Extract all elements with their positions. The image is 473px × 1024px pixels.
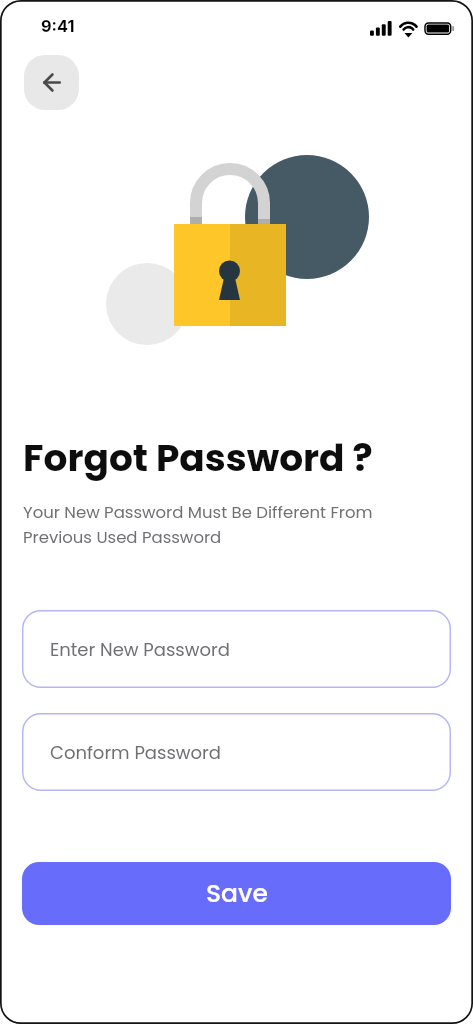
button[interactable]: Save [22, 862, 451, 925]
button[interactable]: Conform Password [22, 713, 451, 791]
staticText: 9:41 [41, 16, 75, 36]
staticText: Save [206, 876, 268, 911]
staticText: Forgot Password ? [23, 432, 373, 485]
staticText: Your New Password Must Be Different From… [23, 501, 373, 549]
staticText: Enter New Password [50, 637, 230, 662]
staticText: Conform Password [50, 740, 221, 765]
button[interactable]: Back [24, 55, 79, 110]
button[interactable]: Enter New Password [22, 610, 451, 688]
